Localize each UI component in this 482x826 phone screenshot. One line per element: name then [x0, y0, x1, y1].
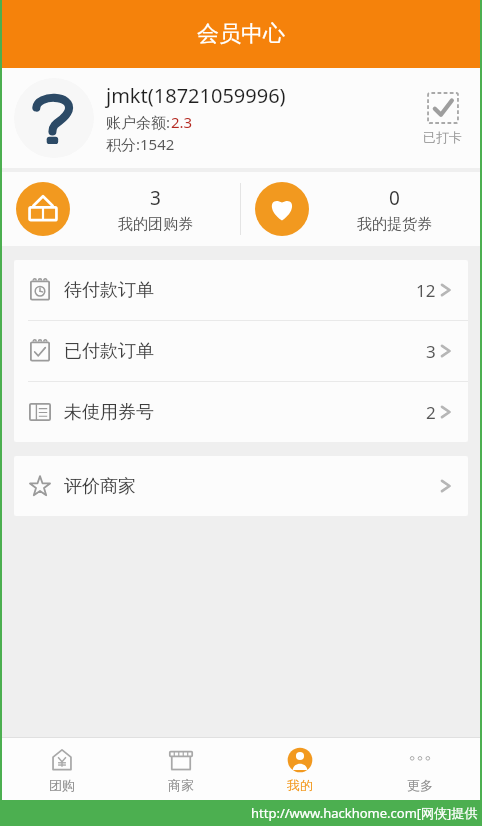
- button[interactable]: 已付款订单: [14, 321, 468, 381]
- staticText: 2.3: [171, 112, 193, 132]
- staticText: 账户余额:: [106, 112, 171, 132]
- staticText: 待付款订单: [64, 279, 416, 302]
- button[interactable]: 0: [241, 172, 480, 246]
- button[interactable]: 待付款订单: [14, 260, 468, 320]
- staticText: jmkt(18721059996): [106, 82, 286, 109]
- staticText: 评价商家: [64, 475, 438, 498]
- button[interactable]: 团购: [2, 738, 121, 800]
- staticText: 已付款订单: [64, 340, 426, 363]
- staticText: 会员中心: [197, 20, 285, 48]
- staticText: http://www.hackhome.com[网侠]提供: [251, 804, 478, 822]
- staticText: 我的: [287, 777, 313, 793]
- button[interactable]: 3: [2, 172, 240, 246]
- staticText: 我的团购券: [118, 215, 193, 234]
- staticText: 3: [150, 185, 161, 211]
- button[interactable]: 已打卡 Check in: [419, 87, 466, 149]
- staticText: 未使用券号: [64, 401, 426, 424]
- button[interactable]: 未使用券号: [14, 382, 468, 442]
- button[interactable]: jmkt(18721059996): [2, 68, 480, 168]
- staticText: 12: [416, 279, 436, 302]
- staticText: 商家: [168, 777, 194, 793]
- staticText: 积分:1542: [106, 134, 175, 154]
- button[interactable]: 我的: [240, 738, 360, 800]
- staticText: 我的提货券: [357, 215, 432, 234]
- staticText: 0: [389, 185, 400, 211]
- button[interactable]: 更多: [360, 738, 480, 800]
- staticText: 3: [426, 340, 436, 363]
- staticText: 更多: [407, 777, 433, 793]
- staticText: 2: [426, 401, 436, 424]
- staticText: 已打卡: [423, 129, 462, 145]
- button[interactable]: 商家: [121, 738, 240, 800]
- staticText: 团购: [49, 777, 75, 793]
- button[interactable]: 评价商家: [14, 456, 468, 516]
